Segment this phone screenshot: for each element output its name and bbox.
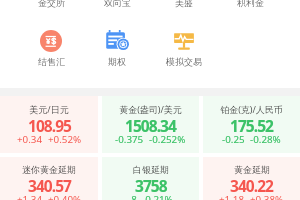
staticText: -8 <box>128 193 137 200</box>
staticText: 双向宝 <box>104 0 131 8</box>
staticText: -0.21% <box>142 193 173 200</box>
staticText: 108.95 <box>28 115 71 136</box>
staticText: 美元/日元 <box>29 103 69 115</box>
staticText: 积利金 <box>237 0 264 8</box>
staticText: -0.28% <box>250 133 281 146</box>
staticText: -0.252% <box>149 133 186 146</box>
staticText: 340.22 <box>230 175 273 196</box>
button[interactable]: 结售汇 <box>18 30 84 67</box>
staticText: 175.52 <box>230 115 273 136</box>
staticText: 3758 <box>135 175 167 196</box>
staticText: 白银延期 <box>133 164 169 175</box>
button[interactable]: 迷你黄金延期 <box>0 157 98 200</box>
staticText: +0.40% <box>48 193 82 200</box>
button[interactable]: 铂金(克)/人民币 <box>203 96 300 153</box>
other: 结售汇 <box>40 30 62 52</box>
staticText: 铂金(克)/人民币 <box>220 103 283 115</box>
staticText: +0.34 <box>17 133 43 146</box>
staticText: 迷你黄金延期 <box>22 164 76 175</box>
staticText: 1508.34 <box>125 115 176 136</box>
staticText: 黄金延期 <box>234 164 270 175</box>
staticText: 模拟交易 <box>166 56 202 67</box>
staticText: -0.25 <box>222 133 245 146</box>
staticText: 结售汇 <box>38 56 65 67</box>
other: 期权 <box>106 30 128 52</box>
staticText: 金交所 <box>38 0 65 8</box>
staticText: 期权 <box>108 56 126 67</box>
button[interactable]: 双向宝 <box>84 0 150 8</box>
staticText: +1.18 <box>219 193 245 200</box>
staticText: 340.57 <box>28 175 71 196</box>
button[interactable]: 模拟交易 <box>150 30 217 67</box>
staticText: 美盛 <box>175 0 193 8</box>
button[interactable]: 金交所 <box>18 0 84 8</box>
button[interactable]: 黄金延期 <box>203 157 300 200</box>
button[interactable]: 白银延期 <box>102 157 199 200</box>
staticText: +0.38% <box>250 193 284 200</box>
button[interactable]: 美元/日元 <box>0 96 98 153</box>
button[interactable]: 期权 <box>84 30 150 67</box>
staticText: +1.34 <box>17 193 43 200</box>
staticText: -0.375 <box>115 133 144 146</box>
button[interactable]: 美盛 <box>150 0 217 8</box>
staticText: +0.52% <box>48 133 82 146</box>
button[interactable]: 黄金(盎司)/美元 <box>102 96 199 153</box>
button[interactable]: 积利金 <box>217 0 284 8</box>
staticText: 黄金(盎司)/美元 <box>119 103 182 115</box>
other: 模拟交易 <box>173 30 195 52</box>
